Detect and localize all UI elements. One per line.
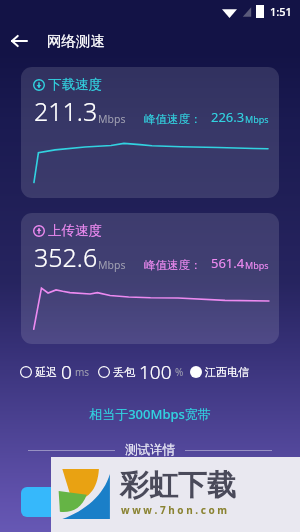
staticText: 1:51 (270, 4, 292, 19)
staticText: 彩虹下载 (120, 467, 236, 504)
staticText: 352.6 (34, 240, 98, 274)
staticText: ms (75, 365, 90, 379)
staticText: 561.4 (211, 254, 245, 272)
staticText: 相当于300Mbps宽带 (0, 405, 300, 423)
staticText: 211.3 (34, 94, 98, 128)
staticText: 峰值速度： (144, 112, 202, 126)
button[interactable]: 上传速度 (21, 213, 279, 344)
staticText: 100 (139, 359, 172, 385)
staticText: 网络测速 (47, 32, 105, 50)
staticText: Mbps (245, 259, 269, 271)
staticText: 上传速度 (48, 222, 102, 239)
staticText: 下载速度 (48, 76, 102, 93)
staticText: 江西电信 (205, 365, 249, 379)
button[interactable]: Back (0, 22, 38, 60)
staticText: Mbps (98, 112, 126, 126)
button[interactable]: 下载速度 (21, 67, 279, 198)
staticText: Mbps (98, 258, 126, 272)
staticText: w w w . 7 h o n . c o m (121, 503, 228, 517)
staticText: % (175, 365, 184, 379)
staticText: 延迟 (35, 365, 57, 379)
staticText: 丢包 (113, 365, 135, 379)
button[interactable]: 测试详情 (28, 442, 272, 458)
staticText: 0 (61, 359, 72, 385)
button[interactable] (21, 487, 101, 517)
staticText: 226.3 (211, 108, 245, 126)
staticText: 峰值速度： (144, 258, 202, 272)
staticText: 测试详情 (125, 442, 175, 458)
staticText: Mbps (245, 113, 269, 125)
